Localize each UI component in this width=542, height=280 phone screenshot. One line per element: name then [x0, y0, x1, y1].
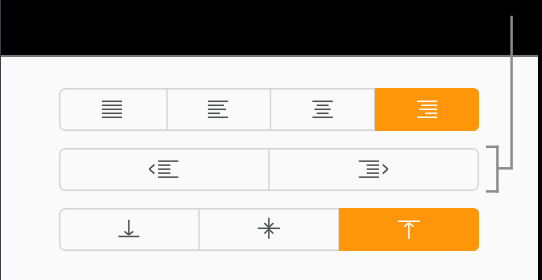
- button[interactable]: Increase indent: [269, 148, 479, 191]
- button[interactable]: Align right: [375, 88, 479, 131]
- button[interactable]: Decrease indent: [59, 148, 269, 191]
- button[interactable]: Align top: [339, 208, 479, 251]
- button[interactable]: Align center: [271, 88, 375, 131]
- button[interactable]: Justify: [59, 88, 167, 131]
- button[interactable]: Align middle: [199, 208, 339, 251]
- button[interactable]: Align bottom: [59, 208, 199, 251]
- button[interactable]: Align left: [167, 88, 271, 131]
